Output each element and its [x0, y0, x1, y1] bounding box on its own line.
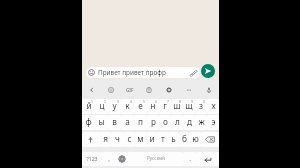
staticText: 6	[155, 99, 157, 104]
staticText: э	[211, 116, 216, 127]
staticText: Русский	[147, 155, 165, 161]
button[interactable]: ш	[171, 99, 183, 114]
staticText: щ	[185, 100, 193, 111]
button[interactable]: GIF	[120, 80, 139, 99]
staticText: б	[182, 133, 187, 144]
button[interactable]: ы	[95, 115, 108, 130]
staticText: й	[86, 100, 92, 111]
staticText: 4	[130, 99, 132, 104]
staticText: с	[127, 133, 132, 144]
button[interactable]: ч	[111, 132, 123, 147]
button[interactable]: й	[82, 99, 95, 114]
button[interactable]: Stickers	[101, 80, 120, 99]
button[interactable]: р	[147, 115, 159, 130]
staticText: я	[103, 133, 108, 144]
button[interactable]: о	[159, 115, 171, 130]
button[interactable]: м	[135, 132, 146, 147]
button[interactable]: д	[183, 115, 195, 130]
staticText: а	[125, 116, 130, 127]
button[interactable]: б	[179, 132, 190, 147]
staticText: м	[137, 133, 144, 144]
button[interactable]: Change language	[115, 152, 128, 166]
staticText: ш	[173, 100, 181, 111]
button[interactable]: ф	[82, 115, 95, 130]
button[interactable]: ,	[102, 152, 115, 166]
staticText: к	[125, 100, 130, 111]
button[interactable]: т	[157, 132, 168, 147]
button[interactable]: Voice input	[199, 80, 219, 99]
staticText: 2	[104, 99, 106, 104]
staticText: 0	[203, 99, 205, 104]
button[interactable]: я	[99, 132, 111, 147]
staticText: ·	[112, 152, 113, 157]
staticText: ы	[98, 116, 105, 127]
button[interactable]: в	[108, 115, 121, 130]
button[interactable]: э	[207, 115, 219, 130]
button[interactable]: ?123	[82, 152, 102, 166]
staticText: 5	[143, 99, 145, 104]
button[interactable]: Enter	[196, 152, 219, 166]
button[interactable]: а	[121, 115, 134, 130]
button[interactable]: ь	[168, 132, 179, 147]
button[interactable]: ж	[195, 115, 207, 130]
button[interactable]: н	[147, 99, 159, 114]
button[interactable]: ю	[190, 132, 201, 147]
staticText: ж	[198, 116, 205, 127]
button[interactable]: л	[171, 115, 183, 130]
staticText: 9	[191, 99, 193, 104]
staticText: д	[187, 116, 192, 127]
staticText: Привет привет профр	[98, 68, 166, 77]
button[interactable]: г	[159, 99, 171, 114]
staticText: н	[150, 100, 156, 111]
button[interactable]: щ	[183, 99, 195, 114]
button[interactable]: с	[123, 132, 135, 147]
button[interactable]: More options	[179, 80, 199, 99]
button[interactable]: п	[134, 115, 147, 130]
button[interactable]: Русский	[128, 152, 183, 166]
staticText: ф	[85, 116, 92, 127]
staticText: у	[112, 100, 117, 111]
staticText: о	[163, 116, 168, 127]
staticText: е	[138, 100, 143, 111]
button[interactable]: к	[121, 99, 134, 114]
button[interactable]: Shift	[82, 132, 99, 147]
staticText: 1	[91, 99, 93, 104]
staticText: в	[112, 116, 117, 127]
staticText: ,	[108, 154, 110, 163]
button[interactable]: Привет привет профр	[86, 67, 200, 78]
staticText: 7	[167, 99, 169, 104]
button[interactable]: у	[108, 99, 121, 114]
staticText: р	[151, 116, 156, 127]
button[interactable]: ц	[95, 99, 108, 114]
staticText: п	[138, 116, 143, 127]
staticText: х	[211, 100, 216, 111]
button[interactable]: Backspace	[201, 132, 219, 147]
staticText: и	[149, 133, 155, 144]
button[interactable]: е	[134, 99, 147, 114]
button[interactable]: Back	[82, 80, 101, 99]
staticText: 3	[117, 99, 119, 104]
button[interactable]: з	[195, 99, 207, 114]
button[interactable]: Clipboard	[139, 80, 159, 99]
staticText: т	[161, 133, 165, 144]
staticText: ю	[192, 133, 199, 144]
staticText: ь	[171, 133, 176, 144]
staticText: ц	[99, 100, 105, 111]
staticText: ч	[115, 133, 120, 144]
button[interactable]: .	[183, 152, 196, 166]
button[interactable]: Send	[201, 64, 215, 78]
staticText: л	[175, 116, 180, 127]
staticText: г	[163, 100, 167, 111]
button[interactable]: и	[146, 132, 157, 147]
button[interactable]: х	[207, 99, 219, 114]
button[interactable]: Settings	[159, 80, 179, 99]
staticText: GIF	[126, 87, 134, 93]
staticText: 8	[179, 99, 181, 104]
staticText: з	[199, 100, 203, 111]
staticText: ?123	[86, 155, 98, 162]
staticText: .	[189, 154, 191, 163]
